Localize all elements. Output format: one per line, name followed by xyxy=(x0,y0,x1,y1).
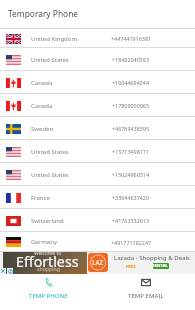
staticText: +33644637420 xyxy=(112,194,150,201)
staticText: +15024960314 xyxy=(112,171,150,178)
staticText: Lazada - Shopping & Deals xyxy=(114,253,190,261)
button[interactable]: United Kingdom xyxy=(0,29,195,48)
button[interactable]: Welcome to xyxy=(0,252,195,274)
button[interactable]: United States xyxy=(0,140,195,163)
staticText: Effortless xyxy=(16,252,79,271)
staticText: Canada xyxy=(31,79,53,87)
staticText: Sweden xyxy=(31,125,54,133)
staticText: Switzerland xyxy=(31,217,64,225)
staticText: INSTALL xyxy=(153,263,169,269)
button[interactable]: TEMP EMAIL xyxy=(97,274,195,310)
staticText: +447441916381 xyxy=(111,35,152,42)
staticText: Germany xyxy=(31,238,57,246)
button[interactable]: Canada xyxy=(0,94,195,117)
button[interactable]: Switzerland xyxy=(0,209,195,232)
staticText: United States xyxy=(31,171,69,179)
staticText: Temporary Phone xyxy=(8,8,79,19)
staticText: +18482040593 xyxy=(112,56,150,63)
staticText: +491771782247 xyxy=(111,239,152,246)
staticText: France xyxy=(31,194,50,202)
staticText: United States xyxy=(31,148,69,156)
staticText: Canada xyxy=(31,102,53,110)
staticText: +41763332613 xyxy=(112,217,150,224)
staticText: FREE xyxy=(126,264,136,270)
staticText: LAZ xyxy=(92,258,104,267)
staticText: Welcome to xyxy=(34,250,62,257)
button[interactable]: France xyxy=(0,186,195,209)
staticText: United Kingdom xyxy=(31,35,78,43)
button[interactable]: Germany xyxy=(0,232,195,252)
staticText: United States xyxy=(31,56,69,64)
staticText: TEMP PHONE xyxy=(29,291,68,299)
button[interactable]: Sweden xyxy=(0,117,195,140)
staticText: +15713498171 xyxy=(112,148,150,155)
staticText: TEMP EMAIL xyxy=(128,291,164,299)
button[interactable]: Canada xyxy=(0,71,195,94)
button[interactable]: TEMP PHONE xyxy=(0,274,97,310)
button[interactable]: United States xyxy=(0,48,195,71)
staticText: +46769438395 xyxy=(112,125,150,132)
button[interactable]: United States xyxy=(0,163,195,186)
staticText: shopping xyxy=(37,265,60,272)
staticText: +16044694244 xyxy=(112,79,150,86)
staticText: +17809000965 xyxy=(112,102,150,109)
